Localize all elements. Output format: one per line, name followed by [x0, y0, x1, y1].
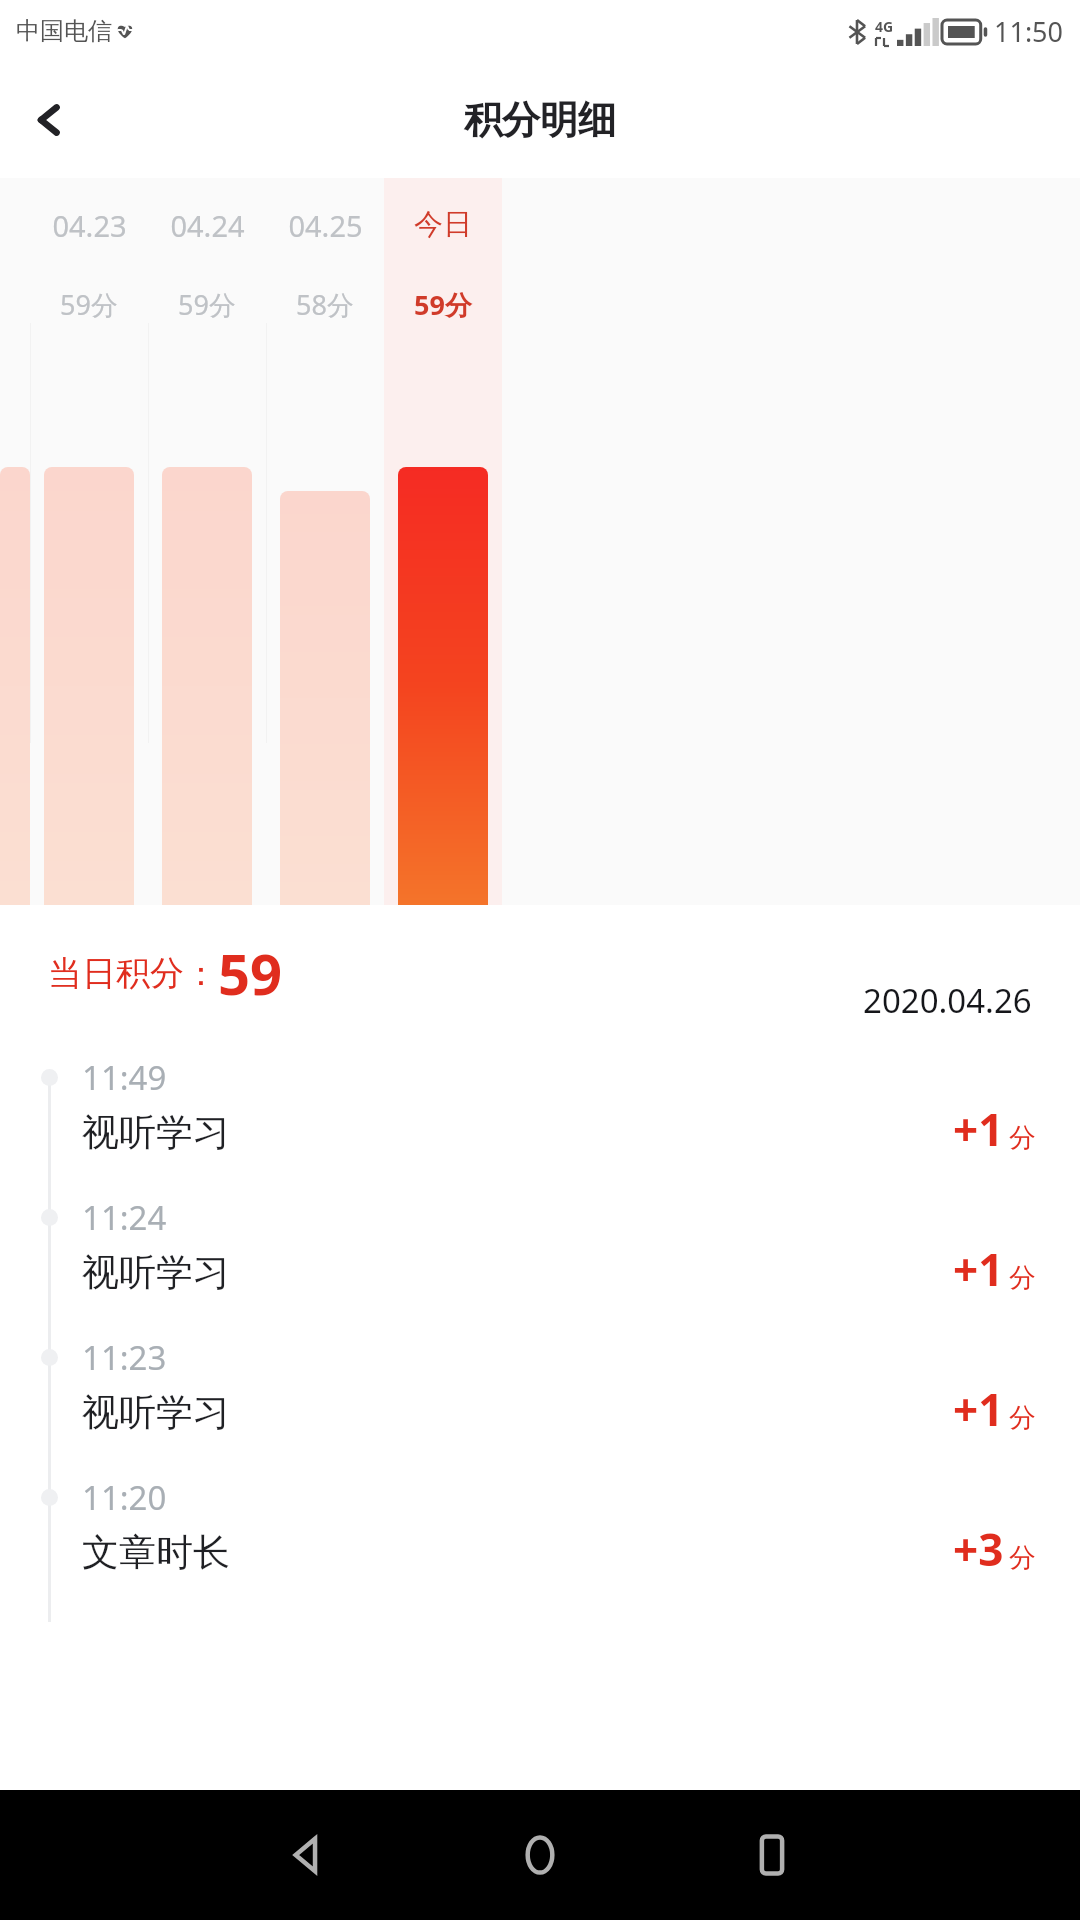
staticText: 积分明细 [464, 96, 616, 144]
button[interactable]: 11:20 [0, 1467, 1080, 1607]
staticText: 视听学习 [82, 1249, 230, 1296]
staticText: 58分 [296, 286, 354, 323]
staticText: 视听学习 [82, 1109, 230, 1156]
button[interactable]: 11:23 [0, 1327, 1080, 1467]
staticText: 59分 [178, 286, 236, 323]
staticText: +1 [953, 1379, 1004, 1439]
staticText: 今日 [414, 206, 472, 243]
staticText: +1 [953, 1099, 1004, 1159]
button[interactable]: Back [253, 1800, 363, 1910]
staticText: 分 [1009, 1261, 1036, 1295]
staticText: 59 [218, 935, 283, 1011]
button[interactable]: 04.24 [148, 178, 266, 905]
button[interactable]: Home [485, 1800, 595, 1910]
staticText: 04.25 [288, 206, 363, 245]
staticText: 11:20 [82, 1475, 167, 1520]
staticText: 11:23 [82, 1335, 167, 1380]
staticText: 中国电信 [16, 16, 112, 46]
staticText: 4G [875, 17, 894, 36]
staticText: 59分 [414, 286, 472, 323]
button[interactable]: 04.23 [30, 178, 148, 905]
staticText: 分 [1009, 1121, 1036, 1155]
button[interactable]: 04.25 [266, 178, 384, 905]
staticText: +3 [953, 1519, 1004, 1579]
button[interactable]: Recent apps [717, 1800, 827, 1910]
button[interactable] [0, 178, 30, 905]
staticText: 当日积分： [48, 952, 218, 995]
staticText: 分 [1009, 1401, 1036, 1435]
button[interactable]: Back [14, 84, 86, 156]
button[interactable]: 今日 [384, 178, 502, 905]
button[interactable]: 11:24 [0, 1187, 1080, 1327]
staticText: 文章时长 [82, 1529, 230, 1576]
staticText: 04.23 [52, 206, 127, 245]
staticText: 11:24 [82, 1195, 167, 1240]
button[interactable]: 11:49 [0, 1047, 1080, 1187]
staticText: +1 [953, 1239, 1004, 1299]
staticText: 2020.04.26 [863, 978, 1032, 1023]
staticText: 04.24 [170, 206, 245, 245]
staticText: 11:49 [82, 1055, 167, 1100]
staticText: 59分 [60, 286, 118, 323]
staticText: 视听学习 [82, 1389, 230, 1436]
staticText: 11:50 [994, 13, 1064, 50]
staticText: 分 [1009, 1541, 1036, 1575]
